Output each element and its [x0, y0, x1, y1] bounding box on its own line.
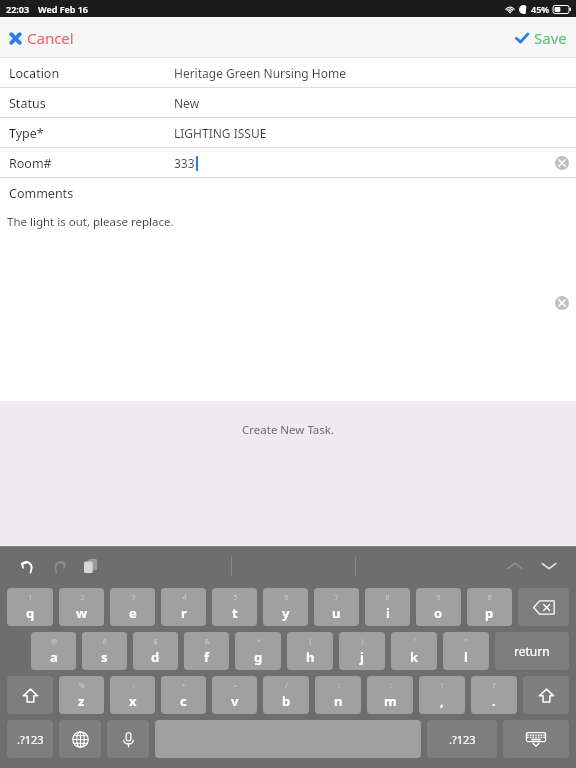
button[interactable]: ' — [391, 632, 437, 670]
button[interactable]: .?123 — [427, 720, 497, 758]
staticText: 4 — [182, 593, 187, 603]
staticText: Status — [9, 95, 46, 112]
staticText: return — [514, 643, 550, 659]
button[interactable]: Backspace — [518, 588, 569, 626]
staticText: = — [233, 681, 238, 691]
staticText: u — [332, 604, 341, 622]
button[interactable]: : — [367, 676, 413, 714]
button[interactable]: Cancel — [9, 28, 74, 48]
staticText: , — [440, 692, 444, 710]
staticText: Type* — [9, 125, 44, 142]
staticText: j — [360, 648, 364, 666]
staticText: a — [50, 648, 58, 666]
button[interactable]: Voice input — [107, 720, 149, 758]
staticText: ) — [361, 637, 364, 647]
staticText: ; — [338, 681, 340, 691]
button[interactable]: Paste — [78, 553, 104, 579]
staticText: ? — [492, 681, 496, 691]
staticText: h — [306, 648, 315, 666]
button[interactable]: 7 — [314, 588, 359, 626]
staticText: ! — [441, 681, 443, 691]
button[interactable]: Redo — [46, 553, 72, 579]
staticText: Cancel — [27, 28, 74, 48]
button[interactable]: Room# — [0, 148, 576, 178]
staticText: .?123 — [17, 732, 44, 747]
button[interactable]: 3 — [110, 588, 155, 626]
staticText: 5 — [233, 593, 238, 603]
button[interactable]: Type* — [0, 118, 576, 148]
button[interactable]: & — [184, 632, 229, 670]
staticText: * — [257, 637, 261, 647]
staticText: s — [101, 648, 108, 666]
button[interactable]: Save — [515, 28, 567, 48]
button[interactable]: 9 — [416, 588, 461, 626]
staticText: q — [26, 604, 35, 622]
button[interactable]: Clear text — [555, 156, 569, 170]
staticText: ' — [414, 637, 416, 647]
button[interactable]: .?123 — [7, 720, 53, 758]
staticText: t — [232, 604, 238, 622]
staticText: @ — [51, 637, 58, 647]
staticText: .?123 — [449, 732, 476, 747]
staticText: % — [79, 681, 85, 691]
button[interactable]: 8 — [365, 588, 410, 626]
button[interactable]: Clear comments — [555, 296, 569, 310]
button[interactable]: 5 — [212, 588, 257, 626]
button[interactable]: 0 — [467, 588, 512, 626]
button[interactable]: Undo — [14, 553, 40, 579]
staticText: Wed Feb 16 — [38, 3, 89, 15]
button[interactable]: Previous field — [502, 553, 528, 579]
button[interactable]: Change keyboard language — [59, 720, 101, 758]
staticText: f — [204, 648, 210, 666]
button[interactable]: ) — [339, 632, 385, 670]
button[interactable]: $ — [133, 632, 178, 670]
button[interactable]: % — [59, 676, 104, 714]
button[interactable]: = — [212, 676, 257, 714]
button[interactable]: Location — [0, 58, 576, 88]
button[interactable]: ? — [471, 676, 517, 714]
button[interactable]: return — [495, 632, 569, 670]
staticText: v — [231, 692, 239, 710]
staticText: : — [390, 681, 392, 691]
staticText: c — [180, 692, 187, 710]
button[interactable]: Shift — [7, 676, 53, 714]
button[interactable]: Hide keyboard — [503, 720, 569, 758]
staticText: x — [129, 692, 137, 710]
staticText: 22:03 — [6, 3, 30, 15]
button[interactable]: ( — [287, 632, 333, 670]
staticText: e — [129, 604, 137, 622]
staticText: l — [464, 648, 468, 666]
button[interactable]: ! — [419, 676, 465, 714]
staticText: d — [151, 648, 160, 666]
staticText: 0 — [487, 593, 492, 603]
staticText: " — [465, 637, 468, 647]
button[interactable]: 2 — [59, 588, 104, 626]
button[interactable]: Status — [0, 88, 576, 118]
button[interactable]: " — [443, 632, 489, 670]
button[interactable]: # — [82, 632, 127, 670]
button[interactable]: - — [110, 676, 155, 714]
button[interactable]: @ — [31, 632, 76, 670]
button[interactable]: * — [235, 632, 281, 670]
button[interactable]: Comments — [0, 178, 576, 208]
button[interactable]: / — [263, 676, 309, 714]
button[interactable]: 1 — [7, 588, 53, 626]
button[interactable]: + — [161, 676, 206, 714]
staticText: Location — [9, 65, 60, 82]
staticText: Heritage Green Nursing Home — [174, 65, 346, 81]
button[interactable]: ; — [315, 676, 361, 714]
staticText: 3 — [131, 593, 136, 603]
staticText: 9 — [436, 593, 441, 603]
staticText: k — [410, 648, 419, 666]
staticText: New — [174, 95, 200, 111]
button[interactable]: 4 — [161, 588, 206, 626]
button[interactable]: 6 — [263, 588, 308, 626]
staticText: Create New Task. — [242, 422, 335, 438]
staticText: & — [204, 637, 210, 647]
button[interactable]: Shift — [523, 676, 569, 714]
button[interactable]: Next field — [536, 553, 562, 579]
staticText: + — [181, 681, 186, 691]
staticText: r — [181, 604, 187, 622]
staticText: Room# — [9, 155, 52, 172]
